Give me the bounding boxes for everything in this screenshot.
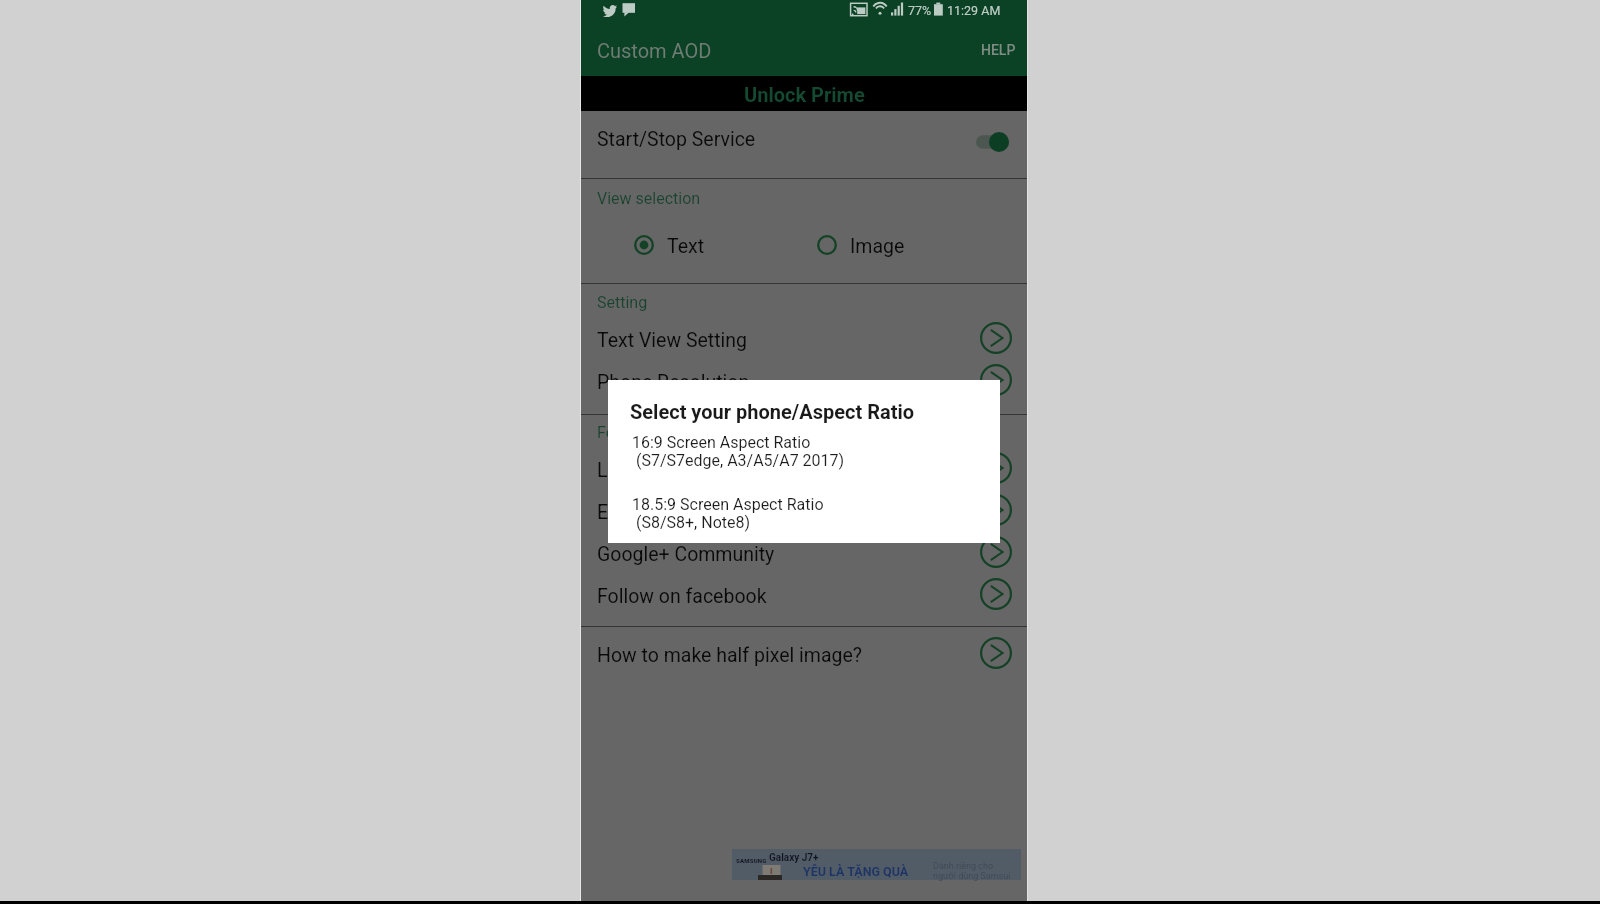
button[interactable]: Image	[813, 229, 909, 261]
button[interactable]: Text View Setting	[581, 317, 1027, 359]
staticText: Select your phone/Aspect Ratio	[630, 400, 915, 423]
staticText: Text View Setting	[597, 329, 748, 352]
staticText: Custom AOD	[597, 39, 712, 62]
staticText: View selection	[597, 189, 701, 208]
button[interactable]: Email to developer	[581, 489, 1027, 531]
staticText: 18.5:9 Screen Aspect Ratio (S8/S8+, Note…	[632, 495, 824, 532]
button[interactable]: HELP	[969, 33, 1028, 67]
staticText: SAMSUNG	[736, 857, 767, 864]
button[interactable]: Advertisement	[732, 849, 1021, 880]
staticText: Start/Stop Service	[597, 128, 756, 151]
button[interactable]: Unlock Prime	[581, 76, 1027, 111]
staticText: Galaxy J7+	[769, 852, 819, 864]
staticText: Like on facebook	[597, 459, 745, 482]
button[interactable]: Text	[630, 229, 709, 261]
button[interactable]: Follow on facebook	[581, 573, 1027, 615]
staticText: YÊU LÀ TẶNG QUÀ	[803, 864, 909, 879]
staticText: 11:29 AM	[947, 3, 1001, 18]
staticText: Setting	[597, 293, 648, 312]
staticText: Unlock Prime	[744, 83, 865, 106]
button[interactable]: 18.5:9 Screen Aspect Ratio (S8/S8+, Note…	[630, 495, 978, 539]
staticText: Google+ Community	[597, 543, 775, 566]
button[interactable]: How to make half pixel image?	[581, 632, 1027, 674]
staticText: HELP	[981, 42, 1016, 58]
button[interactable]: Google+ Community	[581, 531, 1027, 573]
staticText: How to make half pixel image?	[597, 644, 863, 667]
staticText: Follow on facebook	[597, 585, 767, 608]
staticText: Dành riêng cho người dùng Samsui	[933, 861, 1011, 881]
staticText: 77%	[908, 3, 932, 18]
staticText: Phone Resolution	[597, 371, 750, 394]
button[interactable]: Like on facebook	[581, 447, 1027, 489]
staticText: Image	[850, 235, 905, 258]
button[interactable]: Start or stop service	[976, 127, 1009, 157]
button[interactable]: Start/Stop Service	[581, 111, 1027, 178]
staticText: Follow	[597, 423, 644, 442]
staticText: 16:9 Screen Aspect Ratio (S7/S7edge, A3/…	[632, 433, 845, 470]
button[interactable]: Phone Resolution	[581, 359, 1027, 401]
staticText: Text	[667, 235, 705, 258]
staticText: Email to developer	[597, 501, 757, 524]
button[interactable]: 16:9 Screen Aspect Ratio (S7/S7edge, A3/…	[630, 433, 978, 477]
